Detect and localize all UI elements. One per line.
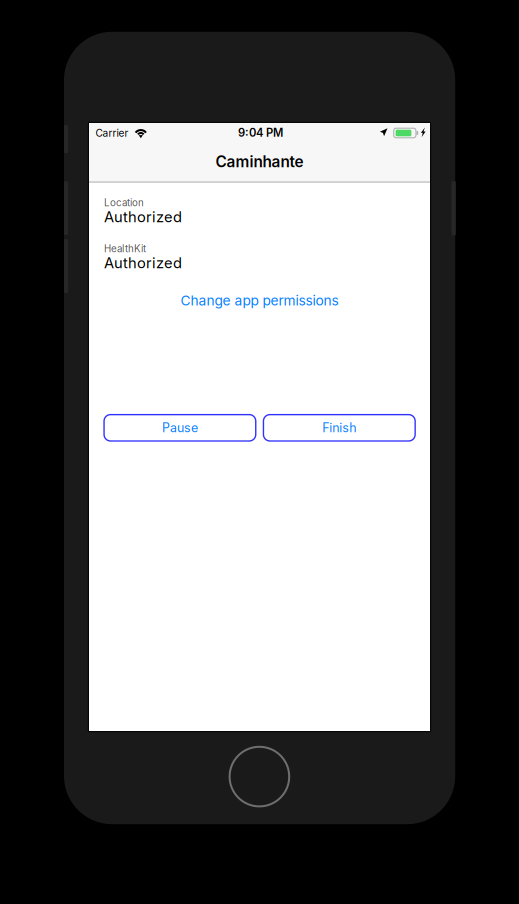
staticText: Carrier — [96, 127, 129, 139]
staticText: 9:04 PM — [238, 126, 283, 140]
staticText: Change app permissions — [180, 292, 338, 309]
staticText: Authorized — [104, 208, 182, 226]
staticText: HealthKit — [104, 243, 146, 255]
staticText: Pause — [162, 420, 198, 435]
button[interactable]: Pause — [104, 415, 256, 441]
staticText: Finish — [322, 420, 356, 435]
staticText: Location — [104, 197, 144, 209]
staticText: Authorized — [104, 254, 182, 272]
button[interactable]: Finish — [263, 415, 415, 441]
button[interactable]: Change app permissions — [104, 290, 415, 310]
staticText: Caminhante — [215, 152, 303, 171]
